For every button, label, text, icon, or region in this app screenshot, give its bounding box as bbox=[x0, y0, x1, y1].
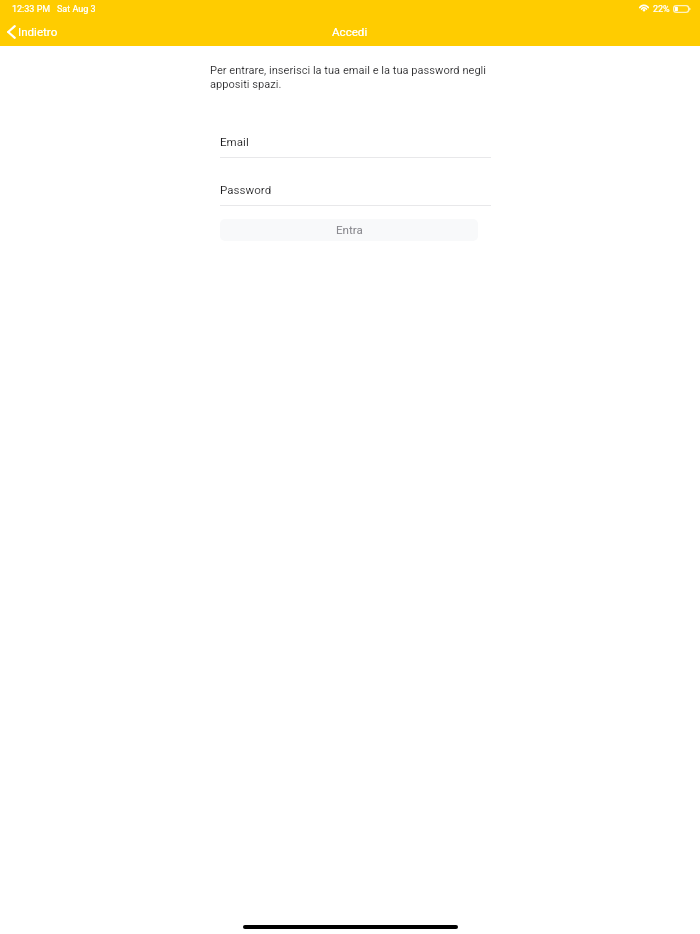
staticText: Accedi bbox=[332, 25, 368, 39]
staticText: 22% bbox=[653, 4, 670, 15]
button[interactable]: Email bbox=[220, 135, 491, 158]
staticText: Password bbox=[220, 183, 272, 197]
button[interactable]: Entra bbox=[220, 219, 478, 241]
staticText: Sat Aug 3 bbox=[57, 4, 96, 15]
button[interactable]: Indietro bbox=[0, 19, 66, 45]
staticText: Indietro bbox=[18, 25, 58, 39]
staticText: Entra bbox=[336, 223, 363, 237]
staticText: Email bbox=[220, 135, 249, 149]
staticText: 12:33 PM bbox=[12, 4, 51, 15]
button[interactable]: Password bbox=[220, 183, 491, 206]
other: Wi-Fi bbox=[639, 2, 649, 12]
staticText: Per entrare, inserisci la tua email e la… bbox=[210, 64, 487, 91]
other: Battery 22 percent bbox=[673, 5, 691, 13]
